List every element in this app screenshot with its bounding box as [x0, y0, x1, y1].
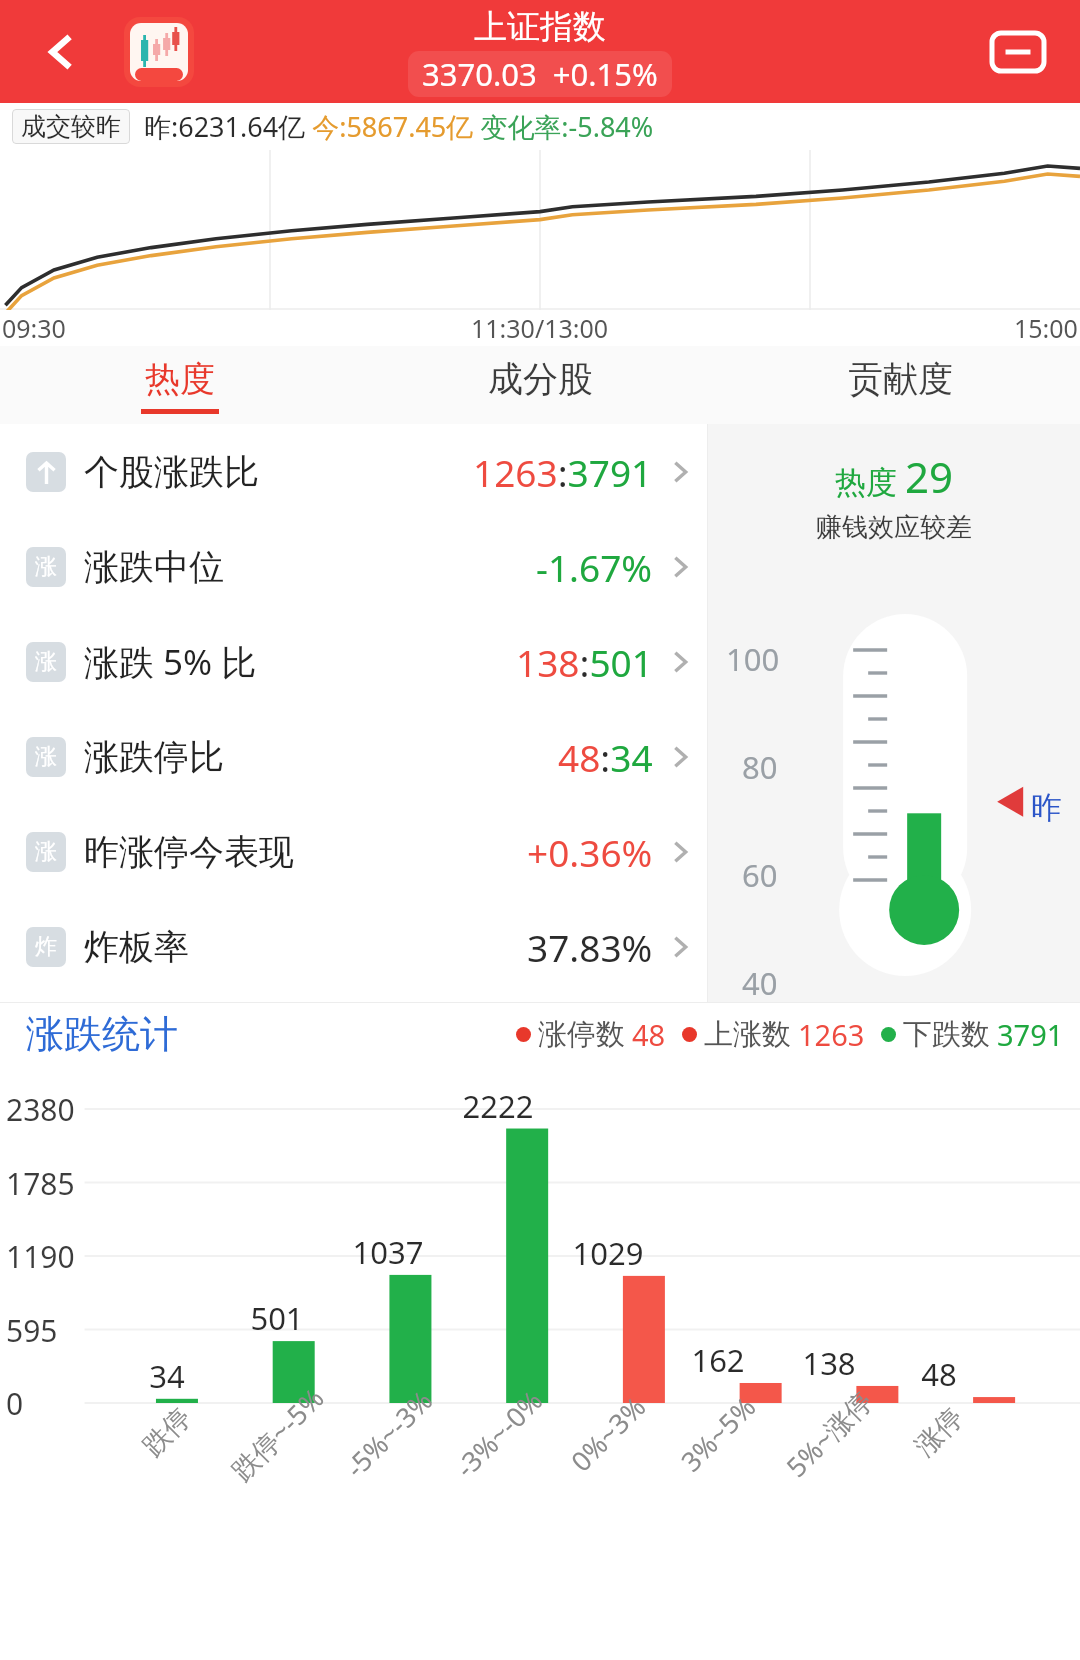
- button[interactable]: 涨: [0, 519, 707, 614]
- staticText: 48:34: [558, 732, 653, 782]
- staticText: 1190: [6, 1236, 75, 1277]
- button[interactable]: 贡献度: [720, 346, 1080, 424]
- staticText: 贡献度: [848, 357, 953, 401]
- staticText: 涨跌统计: [26, 1010, 178, 1058]
- staticText: 涨停: [908, 1401, 970, 1463]
- staticText: 涨: [35, 743, 57, 771]
- staticText: 热度: [145, 357, 215, 401]
- staticText: 501: [232, 1297, 322, 1339]
- staticText: 1029: [563, 1232, 653, 1274]
- staticText: 1037: [343, 1231, 433, 1273]
- staticText: 3791: [997, 1015, 1064, 1054]
- staticText: 48: [632, 1015, 666, 1054]
- staticText: 60: [742, 854, 778, 896]
- staticText: 昨:6231.64亿 今:5867.45亿 变化率:-5.84%: [144, 108, 654, 145]
- button[interactable]: 涨: [0, 804, 707, 899]
- staticText: 成交较昨: [21, 111, 121, 142]
- staticText: 09:30: [2, 311, 66, 345]
- staticText: 上证指数: [474, 6, 606, 48]
- staticText: 595: [6, 1310, 58, 1351]
- staticText: 100: [726, 638, 780, 680]
- staticText: 涨停数: [538, 1016, 625, 1053]
- staticText: 80: [742, 746, 778, 788]
- button[interactable]: App logo: [124, 17, 194, 87]
- staticText: 11:30/13:00: [471, 311, 609, 345]
- staticText: 涨跌 5% 比: [84, 638, 257, 686]
- staticText: 1263:3791: [473, 447, 653, 497]
- staticText: 涨跌中位: [84, 545, 224, 589]
- button[interactable]: 个股涨跌比: [0, 424, 707, 519]
- button[interactable]: Back: [22, 13, 100, 91]
- staticText: 上涨数: [704, 1016, 791, 1053]
- staticText: 34: [122, 1355, 212, 1397]
- staticText: 0%~3%: [562, 1388, 654, 1479]
- staticText: 热度 29: [835, 448, 954, 505]
- staticText: 赚钱效应较差: [816, 511, 972, 544]
- staticText: 3370.03 +0.15%: [422, 53, 658, 95]
- button[interactable]: 涨: [0, 614, 707, 709]
- staticText: 5%~涨停: [778, 1382, 880, 1485]
- button[interactable]: 炸: [0, 899, 707, 994]
- button[interactable]: 热度: [0, 346, 360, 424]
- staticText: 1785: [6, 1163, 75, 1204]
- button[interactable]: 涨: [0, 709, 707, 804]
- staticText: 涨: [35, 838, 57, 866]
- staticText: 下跌数: [903, 1016, 990, 1053]
- staticText: 138: [784, 1342, 874, 1384]
- staticText: 2380: [6, 1089, 75, 1130]
- staticText: 昨: [1031, 788, 1062, 827]
- staticText: 48: [894, 1353, 984, 1395]
- staticText: 昨涨停今表现: [84, 830, 294, 874]
- staticText: 个股涨跌比: [84, 450, 259, 494]
- staticText: 138:501: [516, 637, 653, 687]
- staticText: 37.83%: [527, 922, 653, 972]
- staticText: 炸: [35, 933, 57, 961]
- staticText: 15:00: [1014, 311, 1078, 345]
- staticText: 炸板率: [84, 925, 189, 969]
- staticText: 0: [6, 1383, 24, 1424]
- staticText: 涨跌停比: [84, 735, 224, 779]
- staticText: -3%~-0%: [447, 1382, 550, 1485]
- staticText: +0.36%: [527, 827, 653, 877]
- button[interactable]: 成分股: [360, 346, 720, 424]
- staticText: 2222: [453, 1085, 543, 1127]
- staticText: 成分股: [488, 357, 593, 401]
- button[interactable]: 成交较昨: [12, 109, 130, 144]
- staticText: -1.67%: [536, 542, 653, 592]
- staticText: 涨: [35, 648, 57, 676]
- staticText: 涨: [35, 553, 57, 581]
- staticText: 1263: [798, 1015, 865, 1054]
- staticText: 跌停: [136, 1401, 198, 1463]
- staticText: -5%~-3%: [337, 1382, 440, 1485]
- staticText: 162: [673, 1339, 763, 1381]
- staticText: 3%~5%: [672, 1388, 764, 1479]
- staticText: 跌停~-5%: [223, 1379, 332, 1488]
- staticText: 40: [742, 962, 778, 1002]
- button[interactable]: Minimize: [980, 14, 1056, 90]
